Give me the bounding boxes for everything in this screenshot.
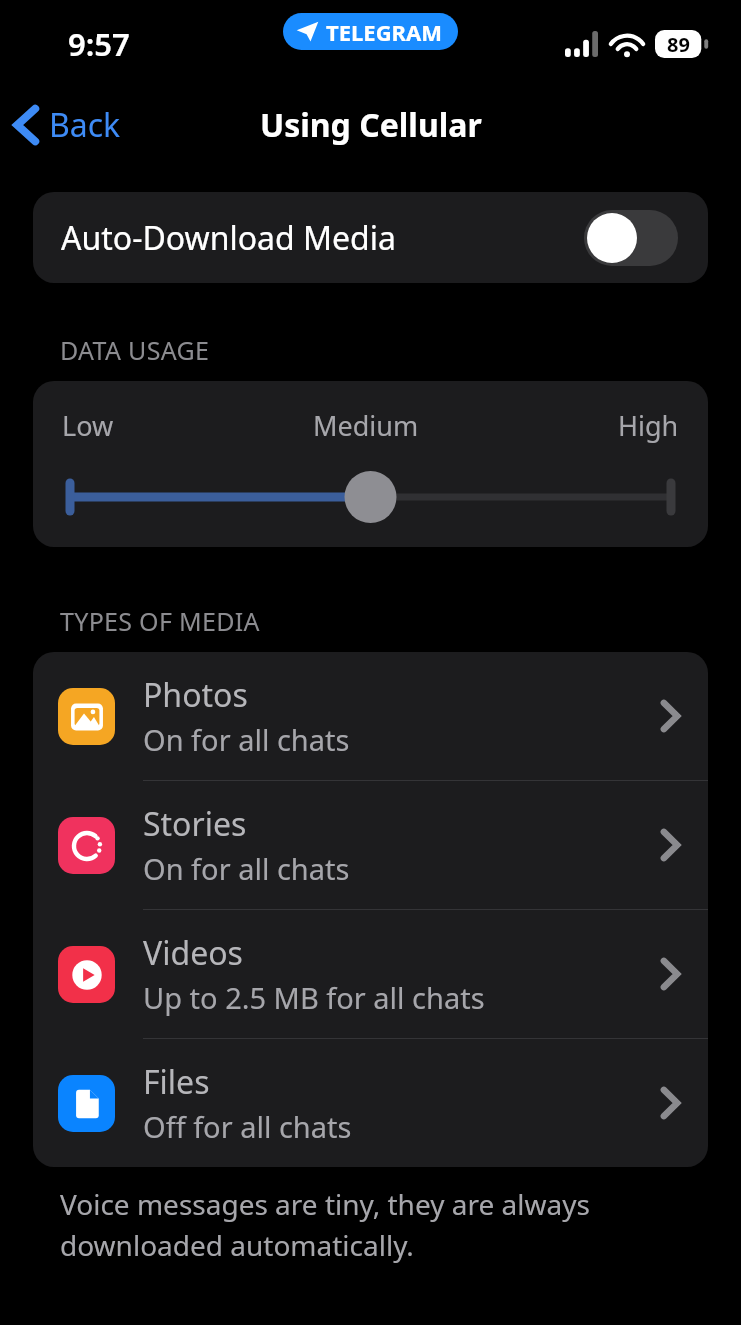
staticText: TYPES OF MEDIA <box>60 604 260 638</box>
button[interactable]: Photos <box>33 652 708 780</box>
staticText: Off for all chats <box>143 1107 352 1146</box>
staticText: On for all chats <box>143 849 350 888</box>
staticText: Videos <box>143 931 243 975</box>
staticText: Using Cellular <box>260 103 482 147</box>
staticText: Low <box>62 407 114 444</box>
staticText: Up to 2.5 MB for all chats <box>143 978 485 1017</box>
staticText: High <box>618 407 679 444</box>
staticText: Auto-Download Media <box>61 216 584 260</box>
staticText: Voice messages are tiny, they are always <box>60 1185 590 1223</box>
staticText: Back <box>49 103 121 147</box>
button[interactable]: Stories <box>33 781 708 909</box>
staticText: DATA USAGE <box>60 333 210 367</box>
staticText: On for all chats <box>143 720 350 759</box>
button[interactable]: Videos <box>33 910 708 1038</box>
button[interactable]: Auto-Download Media <box>33 192 708 283</box>
staticText: downloaded automatically. <box>60 1226 414 1264</box>
staticText: 89 <box>667 31 690 58</box>
button[interactable]: Auto-Download Media toggle, off <box>584 210 678 266</box>
button[interactable]: Back <box>0 95 135 155</box>
staticText: Medium <box>313 407 419 444</box>
staticText: Files <box>143 1060 210 1104</box>
button[interactable]: Data usage level, Medium <box>33 468 708 526</box>
button[interactable]: TELEGRAM <box>283 13 458 50</box>
staticText: TELEGRAM <box>326 17 442 47</box>
button[interactable]: Files <box>33 1039 708 1167</box>
staticText: Photos <box>143 673 248 717</box>
staticText: 9:57 <box>68 23 130 65</box>
staticText: Stories <box>143 802 247 846</box>
